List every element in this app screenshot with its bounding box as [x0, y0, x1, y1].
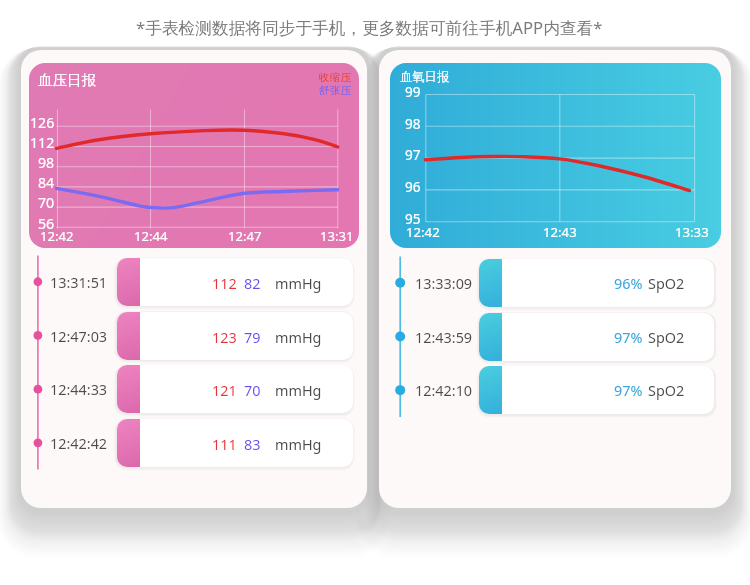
staticText: 12:42:10: [415, 381, 473, 401]
staticText: 83: [244, 435, 261, 455]
staticText: 112: [30, 133, 55, 152]
staticText: 98: [405, 114, 421, 133]
staticText: 121: [212, 381, 237, 401]
staticText: 收缩压: [319, 71, 352, 84]
staticText: 13:31:51: [50, 273, 108, 293]
button[interactable]: 血氧日报: [390, 63, 721, 248]
staticText: 96: [405, 177, 421, 196]
staticText: 97%: [614, 328, 643, 348]
staticText: SpO2: [648, 274, 685, 294]
staticText: 96%: [614, 274, 643, 294]
staticText: 111: [212, 435, 237, 455]
staticText: 13:33: [675, 223, 709, 241]
button[interactable]: 12:42:42: [48, 419, 108, 467]
staticText: mmHg: [275, 274, 322, 294]
staticText: 123: [212, 328, 237, 348]
button[interactable]: 12:42:10: [413, 366, 473, 414]
staticText: 12:44: [134, 227, 168, 245]
button[interactable]: 12:44:33: [48, 365, 108, 413]
staticText: 82: [244, 274, 261, 294]
button[interactable]: 112: [117, 258, 353, 306]
staticText: 12:43: [543, 223, 577, 241]
button[interactable]: 111: [117, 419, 353, 467]
staticText: 13:31: [320, 227, 354, 245]
staticText: 12:44:33: [50, 380, 108, 400]
staticText: 13:33:09: [415, 274, 473, 294]
staticText: 126: [30, 113, 55, 132]
staticText: 70: [38, 193, 55, 212]
button[interactable]: 血压日报: [29, 63, 359, 248]
staticText: 血氧日报: [400, 69, 450, 84]
staticText: *手表检测数据将同步于手机，更多数据可前往手机APP内查看*: [136, 16, 603, 39]
button[interactable]: 123: [117, 312, 353, 360]
staticText: 95: [405, 209, 421, 228]
button[interactable]: 121: [117, 365, 353, 413]
button[interactable]: 12:43:59: [413, 313, 473, 361]
button[interactable]: 13:33:09: [413, 259, 473, 307]
button[interactable]: 96%: [479, 259, 714, 307]
staticText: mmHg: [275, 435, 322, 455]
staticText: 12:42:42: [50, 434, 108, 454]
staticText: mmHg: [275, 328, 322, 348]
staticText: SpO2: [648, 381, 685, 401]
staticText: 12:42: [40, 227, 74, 245]
staticText: 84: [38, 173, 55, 192]
staticText: 舒张压: [319, 84, 352, 97]
staticText: 12:47:03: [50, 327, 108, 347]
staticText: 98: [38, 153, 55, 172]
staticText: 12:43:59: [415, 328, 473, 348]
staticText: 99: [405, 82, 421, 101]
button[interactable]: 12:47:03: [48, 312, 108, 360]
staticText: 血压日报: [38, 71, 96, 89]
staticText: 79: [244, 328, 261, 348]
staticText: 112: [212, 274, 237, 294]
button[interactable]: 97%: [479, 313, 714, 361]
staticText: 97: [405, 145, 421, 164]
staticText: SpO2: [648, 328, 685, 348]
staticText: 12:47: [228, 227, 262, 245]
staticText: 70: [244, 381, 261, 401]
button[interactable]: 13:31:51: [48, 258, 108, 306]
staticText: 97%: [614, 381, 643, 401]
staticText: 56: [38, 214, 55, 233]
staticText: mmHg: [275, 381, 322, 401]
button[interactable]: 97%: [479, 366, 714, 414]
staticText: 12:42: [406, 223, 440, 241]
